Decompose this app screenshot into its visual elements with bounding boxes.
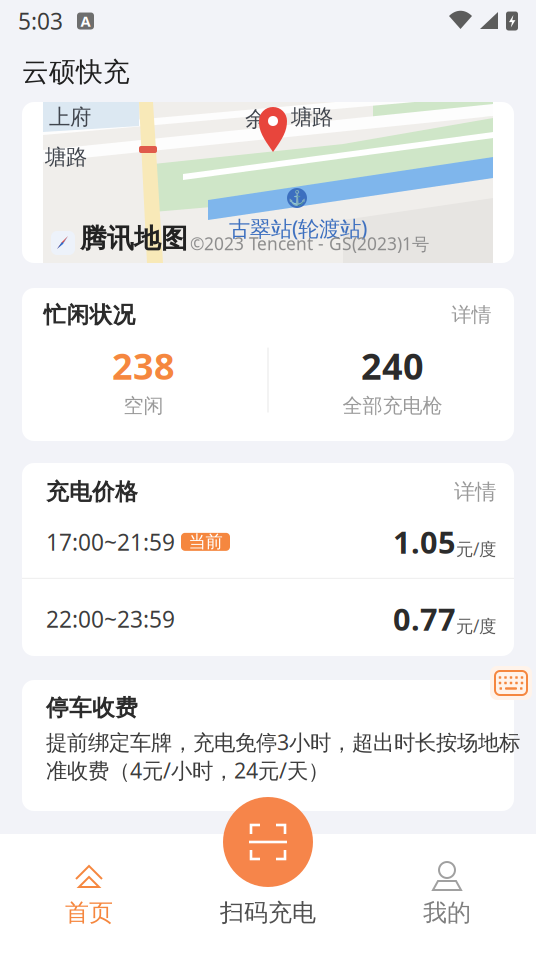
staticText: 元/度: [456, 614, 496, 637]
staticText: 首页: [65, 898, 113, 927]
button[interactable]: 首页: [0, 834, 178, 954]
staticText: 0.77: [393, 598, 456, 639]
staticText: 塘路: [45, 144, 87, 170]
button[interactable]: 我的: [358, 834, 536, 954]
button[interactable]: 扫码充电: [223, 797, 313, 887]
staticText: 当前: [188, 531, 222, 552]
button[interactable]: 详情: [451, 303, 491, 327]
staticText: 1.05: [393, 521, 456, 562]
staticText: ⚓: [288, 190, 306, 206]
staticText: 余: [245, 106, 266, 132]
staticText: 5:03: [18, 6, 63, 36]
staticText: 空闲: [123, 394, 163, 418]
staticText: A: [80, 11, 90, 31]
staticText: ©2023 Tencent - GS(2023)1号: [190, 232, 429, 255]
staticText: 停车收费: [46, 694, 138, 722]
staticText: 22:00~23:59: [46, 604, 175, 634]
button[interactable]: 详情: [454, 479, 496, 505]
staticText: 全部充电枪: [342, 394, 442, 418]
staticText: 充电价格: [46, 478, 138, 506]
staticText: 240: [361, 342, 424, 390]
staticText: 古翠站(轮渡站): [229, 214, 367, 242]
staticText: 详情: [451, 303, 491, 327]
staticText: 云硕快充: [22, 56, 130, 88]
staticText: 详情: [454, 479, 496, 505]
staticText: 17:00~21:59: [46, 527, 175, 557]
staticText: 上府: [49, 104, 91, 130]
staticText: 忙闲状况: [43, 301, 135, 329]
staticText: 扫码充电: [220, 898, 316, 927]
staticText: 我的: [423, 898, 471, 927]
staticText: 238: [112, 342, 175, 390]
button[interactable]: 键盘输入: [490, 666, 532, 700]
staticText: 腾讯地图: [80, 222, 188, 255]
button[interactable]: 扫码充电: [178, 834, 358, 954]
staticText: 提前绑定车牌，充电免停3小时，超出时长按场地标准收费（4元/小时，24元/天）: [46, 728, 520, 784]
staticText: 元/度: [456, 537, 496, 560]
staticText: 塘路: [291, 104, 333, 130]
